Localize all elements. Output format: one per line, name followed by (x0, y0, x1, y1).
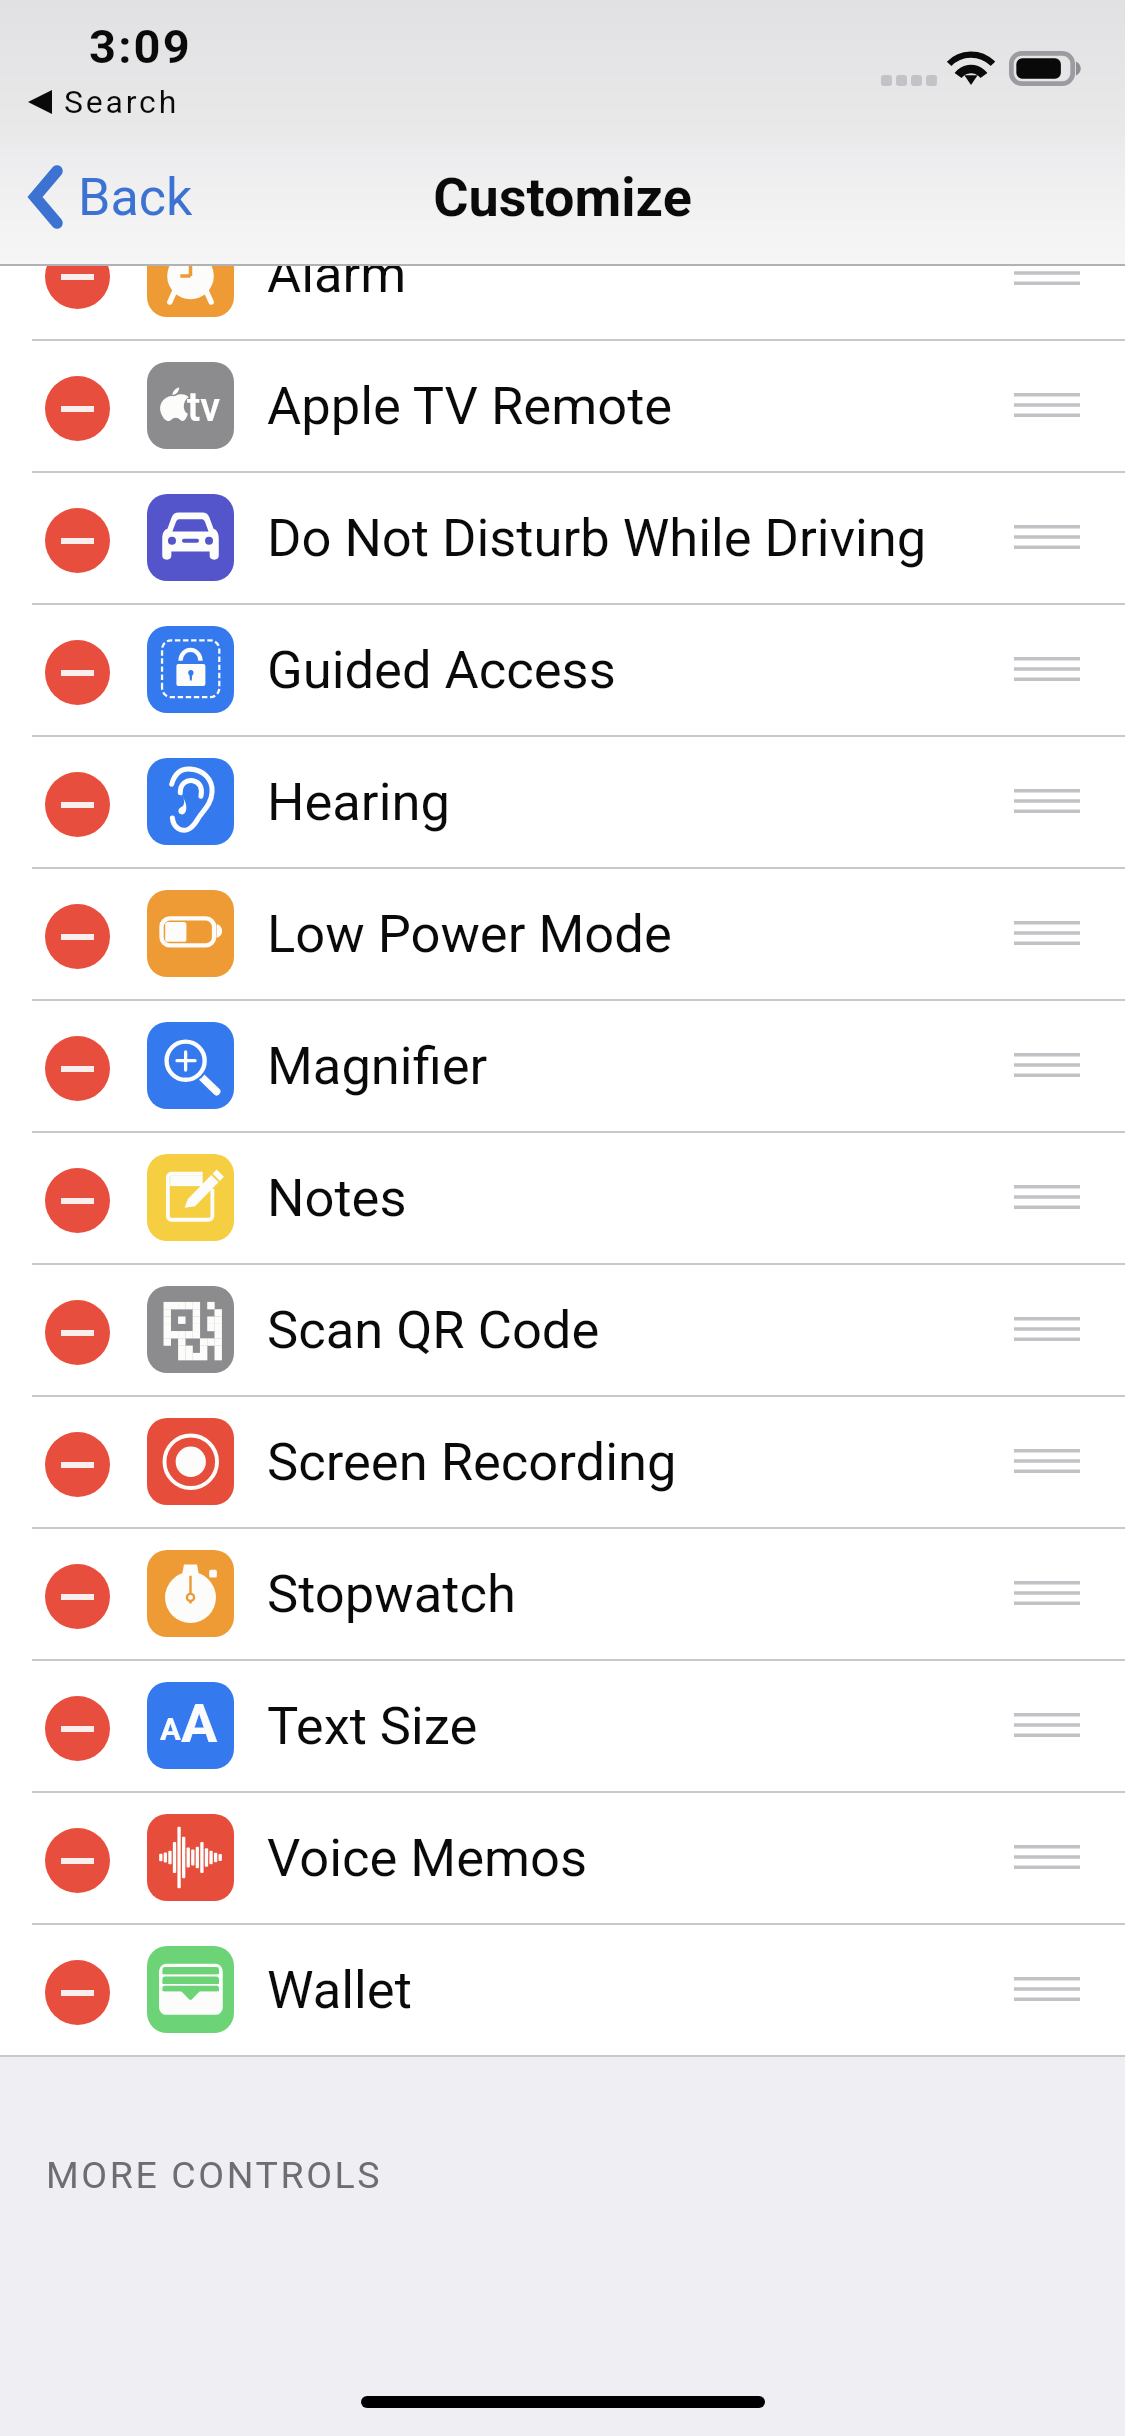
other: Reorder Text Size (1014, 1713, 1080, 1737)
other: Remove Wallet (45, 1960, 110, 2025)
other: Remove Low Power Mode (45, 904, 110, 969)
other: Reorder Magnifier (1014, 1053, 1080, 1077)
button[interactable]: Remove Notes (0, 1131, 1125, 1263)
staticText: Voice Memos (267, 1827, 588, 1889)
other: Reorder Low Power Mode (1014, 921, 1080, 945)
staticText: Stopwatch (267, 1563, 516, 1625)
button[interactable]: Search (20, 83, 188, 121)
staticText: tv (187, 384, 221, 431)
staticText: Screen Recording (267, 1431, 677, 1493)
other: Wi-Fi (948, 51, 994, 85)
staticText: Apple TV Remote (267, 375, 673, 437)
button[interactable]: Remove Magnifier (0, 999, 1125, 1131)
staticText: MORE CONTROLS (46, 2153, 383, 2197)
other: Reorder Stopwatch (1014, 1581, 1080, 1605)
staticText: Hearing (267, 771, 450, 833)
other: Remove Text Size (45, 1696, 110, 1761)
staticText: Notes (267, 1167, 407, 1229)
staticText: Low Power Mode (267, 903, 672, 965)
button[interactable]: Remove Scan QR Code (0, 1263, 1125, 1395)
other: Remove Magnifier (45, 1036, 110, 1101)
staticText: A (160, 1711, 181, 1747)
button[interactable]: Remove Stopwatch (0, 1527, 1125, 1659)
other: Reorder Do Not Disturb While Driving (1014, 525, 1080, 549)
button[interactable]: Remove Do Not Disturb While Driving (0, 471, 1125, 603)
staticText: 3:09 (89, 19, 192, 74)
other: Remove Stopwatch (45, 1564, 110, 1629)
button[interactable]: Back (9, 158, 207, 236)
other: Reorder Voice Memos (1014, 1845, 1080, 1869)
other: Remove Alarm (45, 244, 110, 309)
button[interactable]: Remove Apple TV Remote (0, 339, 1125, 471)
button[interactable]: Remove Voice Memos (0, 1791, 1125, 1923)
button[interactable]: Remove Alarm (0, 207, 1125, 339)
other: Remove Guided Access (45, 640, 110, 705)
other: Battery (1009, 51, 1082, 86)
other: Reorder Wallet (1014, 1977, 1080, 2001)
other: Cellular signal (881, 75, 937, 86)
other: Remove Notes (45, 1168, 110, 1233)
other: Remove Voice Memos (45, 1828, 110, 1893)
other: Reorder Notes (1014, 1185, 1080, 1209)
other: Remove Do Not Disturb While Driving (45, 508, 110, 573)
staticText: Alarm (267, 243, 407, 305)
other: Reorder Screen Recording (1014, 1449, 1080, 1473)
button[interactable]: Remove Guided Access (0, 603, 1125, 735)
other: Remove Hearing (45, 772, 110, 837)
other: Reorder Guided Access (1014, 657, 1080, 681)
staticText: Guided Access (267, 639, 616, 701)
staticText: Customize (433, 166, 692, 229)
staticText: A (181, 1692, 218, 1755)
other: Reorder Hearing (1014, 789, 1080, 813)
other: Reorder Scan QR Code (1014, 1317, 1080, 1341)
staticText: Scan QR Code (267, 1299, 600, 1361)
other: Remove Screen Recording (45, 1432, 110, 1497)
staticText: Text Size (267, 1695, 478, 1757)
other: Reorder Apple TV Remote (1014, 393, 1080, 417)
staticText: Back (78, 167, 193, 228)
staticText: Search (64, 83, 180, 121)
button[interactable]: Remove Screen Recording (0, 1395, 1125, 1527)
button[interactable]: Remove Low Power Mode (0, 867, 1125, 999)
button[interactable]: Remove Text Size (0, 1659, 1125, 1791)
other: Remove Apple TV Remote (45, 376, 110, 441)
other: Remove Scan QR Code (45, 1300, 110, 1365)
button[interactable]: Remove Wallet (0, 1923, 1125, 2055)
staticText: Wallet (267, 1959, 412, 2021)
staticText: Do Not Disturb While Driving (267, 507, 927, 569)
button[interactable]: Remove Hearing (0, 735, 1125, 867)
other: Reorder Alarm (1014, 261, 1080, 285)
staticText: Magnifier (267, 1035, 488, 1097)
